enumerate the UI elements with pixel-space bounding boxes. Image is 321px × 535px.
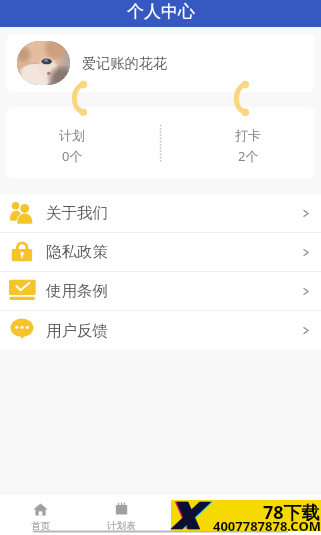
button[interactable]: Schedule [81, 495, 161, 535]
other: Profile [274, 502, 289, 517]
staticText: 打卡 [235, 127, 261, 143]
button[interactable]: Home [0, 495, 81, 535]
button[interactable]: 隐私政策 [0, 233, 321, 272]
button[interactable]: Statistics [161, 495, 241, 535]
staticText: 隐私政策 [46, 242, 108, 262]
staticText: 统计 [192, 520, 211, 532]
staticText: 计划表 [107, 520, 136, 532]
staticText: 关于我们 [46, 203, 108, 223]
other: Home [33, 502, 48, 517]
button[interactable]: 计划 [6, 107, 160, 178]
staticText: 我的 [272, 520, 291, 532]
button[interactable]: Profile [241, 495, 321, 535]
staticText: 0个 [62, 147, 83, 165]
staticText: 4007787878.COM [213, 517, 321, 535]
button[interactable]: 用户反馈 [0, 311, 321, 350]
staticText: 78下载 [263, 500, 320, 525]
staticText: 2个 [238, 147, 259, 165]
staticText: 使用条例 [46, 281, 108, 301]
button[interactable]: 使用条例 [0, 272, 321, 311]
button[interactable]: 爱记账的花花 [6, 34, 315, 92]
staticText: 个人中心 [127, 1, 195, 22]
staticText: 用户反馈 [46, 321, 108, 341]
button[interactable]: 打卡 [160, 107, 315, 178]
staticText: 计划 [59, 127, 85, 143]
other: Statistics [194, 502, 209, 517]
staticText: 首页 [31, 520, 50, 532]
button[interactable]: 关于我们 [0, 194, 321, 233]
other: Schedule [114, 502, 129, 517]
staticText: 爱记账的花花 [82, 54, 168, 72]
